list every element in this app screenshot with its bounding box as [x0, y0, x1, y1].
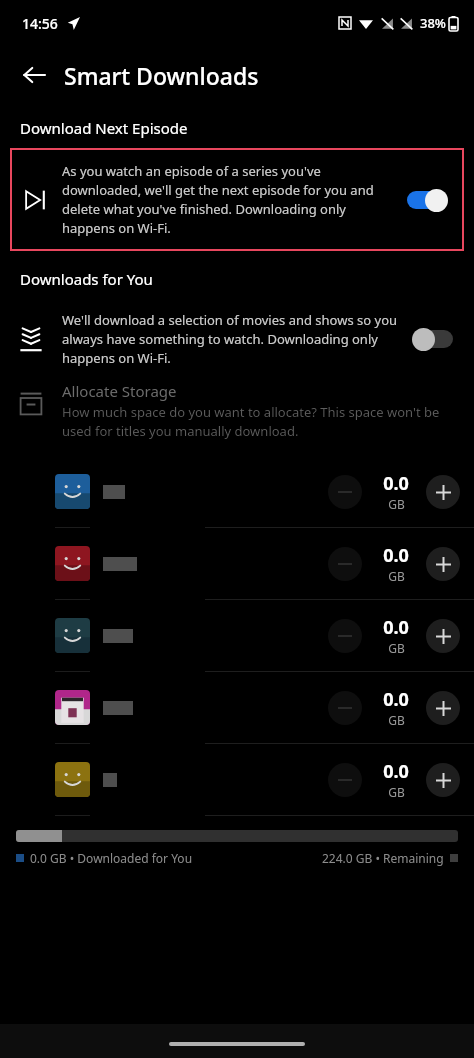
button[interactable]: Increase storage [426, 619, 460, 653]
staticText: 0.0 [383, 471, 409, 496]
staticText: Smart Downloads [64, 60, 259, 91]
button[interactable]: We'll download a selection of movies and… [0, 311, 474, 367]
staticText: How much space do you want to allocate? … [62, 403, 460, 440]
staticText: 14:56 [22, 14, 58, 33]
button[interactable]: Increase storage [426, 475, 460, 509]
button[interactable]: Decrease storage [328, 691, 362, 725]
button[interactable]: Decrease storage [328, 547, 362, 581]
staticText: 0.0 [383, 687, 409, 712]
staticText: GB [388, 568, 405, 584]
button[interactable]: Toggle off [410, 326, 456, 352]
button[interactable]: Decrease storage [0, 600, 474, 671]
staticText: We'll download a selection of movies and… [62, 311, 398, 367]
staticText: Allocate Storage [62, 381, 177, 401]
staticText: Download Next Episode [20, 118, 188, 138]
staticText: GB [388, 712, 405, 728]
staticText: 224.0 GB • Remaining [322, 850, 444, 866]
button[interactable]: Increase storage [426, 763, 460, 797]
button[interactable]: Decrease storage [328, 475, 362, 509]
button[interactable]: Decrease storage [0, 744, 474, 815]
button[interactable]: Increase storage [426, 547, 460, 581]
button[interactable]: Decrease storage [0, 672, 474, 743]
button[interactable]: Toggle on [404, 187, 450, 213]
staticText: 0.0 [383, 543, 409, 568]
staticText: 38% [420, 14, 446, 32]
staticText: 0.0 GB • Downloaded for You [30, 850, 193, 866]
button[interactable]: Decrease storage [328, 763, 362, 797]
button[interactable]: Decrease storage [0, 456, 474, 527]
staticText: GB [388, 784, 405, 800]
button[interactable]: Back [12, 53, 56, 97]
button[interactable]: Increase storage [426, 691, 460, 725]
staticText: 0.0 [383, 615, 409, 640]
button[interactable]: Decrease storage [0, 528, 474, 599]
staticText: As you watch an episode of a series you'… [62, 162, 392, 237]
staticText: GB [388, 496, 405, 512]
button[interactable]: As you watch an episode of a series you'… [10, 148, 464, 251]
staticText: 0.0 [383, 759, 409, 784]
button[interactable]: Decrease storage [328, 619, 362, 653]
staticText: GB [388, 640, 405, 656]
staticText: Downloads for You [20, 269, 153, 289]
